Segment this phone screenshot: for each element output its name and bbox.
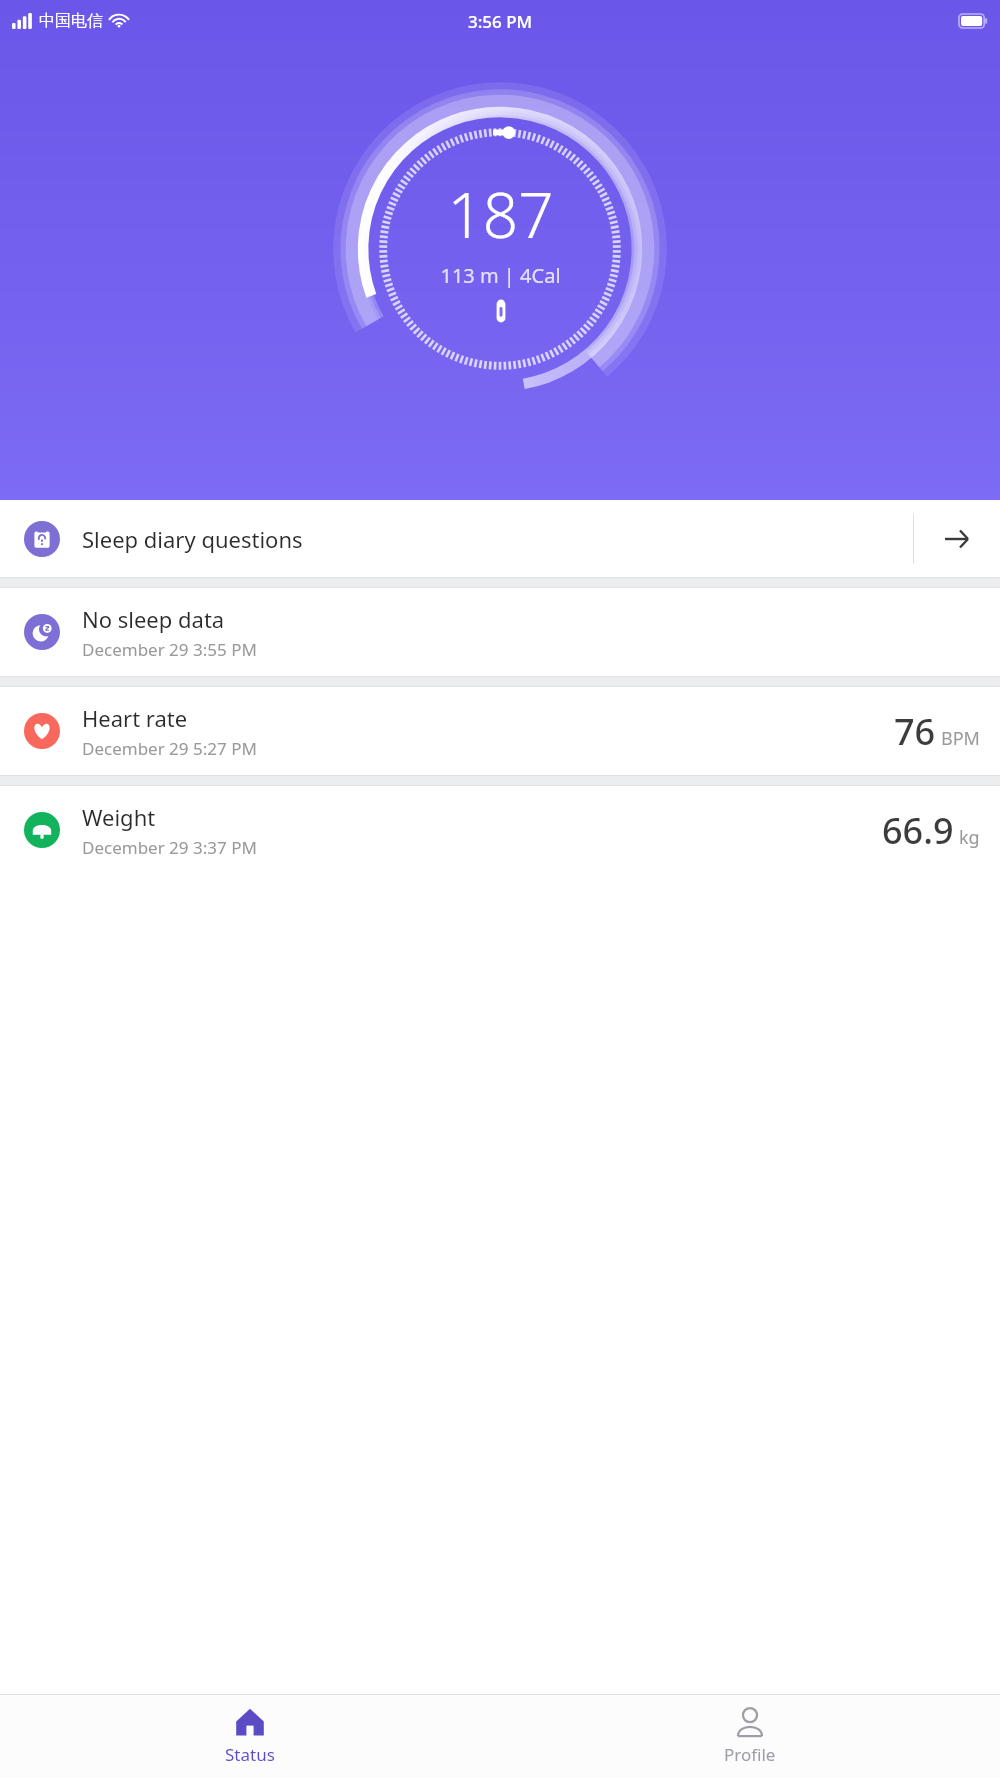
staticText: December 29 3:37 PM — [82, 836, 257, 859]
staticText: kg — [959, 825, 980, 850]
staticText: 3:56 PM — [468, 10, 533, 33]
staticText: Heart rate — [82, 703, 188, 733]
staticText: Profile — [724, 1743, 776, 1766]
button[interactable]: Profile — [500, 1695, 1000, 1778]
staticText: December 29 5:27 PM — [82, 737, 257, 760]
staticText: 76 — [894, 707, 936, 756]
button[interactable]: No sleep data — [0, 588, 1000, 676]
staticText: December 29 3:55 PM — [82, 638, 257, 661]
staticText: No sleep data — [82, 604, 225, 634]
button[interactable]: Sleep diary questions — [0, 500, 1000, 577]
staticText: Sleep diary questions — [82, 524, 913, 554]
staticText: 113 m | 4Cal — [440, 262, 561, 289]
button[interactable]: Status — [0, 1695, 500, 1778]
staticText: Weight — [82, 802, 156, 832]
button[interactable]: Weight — [0, 786, 1000, 874]
staticText: Status — [225, 1743, 275, 1766]
staticText: 187 — [447, 172, 554, 256]
staticText: BPM — [941, 726, 980, 751]
button[interactable]: Heart rate — [0, 687, 1000, 775]
staticText: 66.9 — [882, 806, 954, 855]
staticText: 中国电信 — [39, 11, 103, 31]
